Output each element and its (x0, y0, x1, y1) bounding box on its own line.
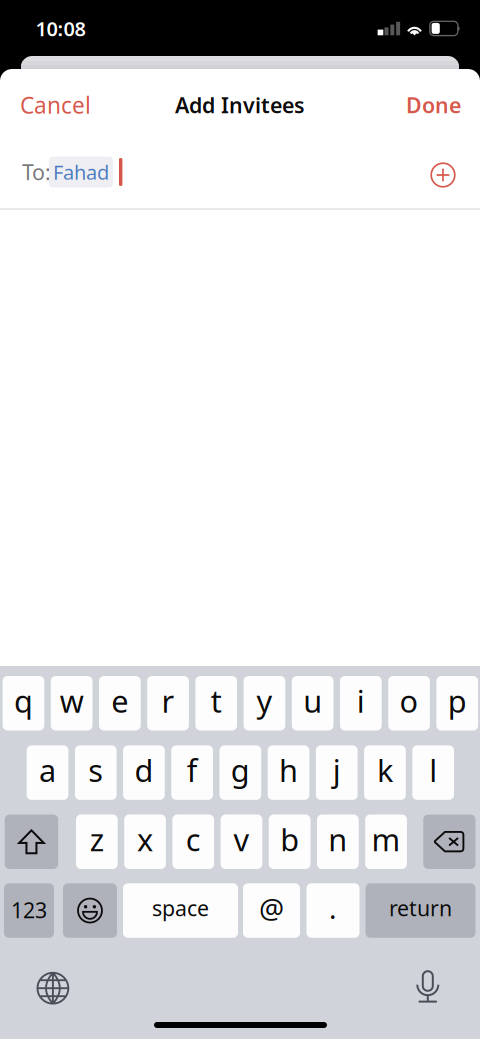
staticText: s (88, 750, 103, 790)
button[interactable]: j (316, 745, 358, 800)
staticText: v (233, 819, 249, 860)
button[interactable]: r (147, 676, 189, 730)
button[interactable]: space (123, 883, 238, 938)
staticText: y (256, 680, 272, 721)
button[interactable]: t (195, 676, 237, 730)
staticText: a (39, 750, 56, 790)
button[interactable]: y (244, 676, 285, 730)
staticText: space (152, 894, 209, 922)
button[interactable]: c (172, 814, 214, 869)
staticText: o (400, 680, 419, 721)
button[interactable]: i (340, 676, 382, 730)
button[interactable]: v (221, 814, 262, 869)
button[interactable]: a (27, 745, 68, 800)
staticText: b (280, 819, 299, 860)
staticText: c (186, 819, 201, 860)
button[interactable]: q (3, 676, 44, 730)
button[interactable]: d (123, 745, 165, 800)
button[interactable]: x (124, 814, 166, 869)
button[interactable]: Done (406, 91, 461, 119)
staticText: g (231, 750, 250, 790)
staticText: r (162, 680, 175, 721)
staticText: Fahad (53, 159, 109, 185)
button[interactable]: l (412, 745, 454, 800)
button[interactable]: Emoji (63, 883, 117, 938)
staticText: d (134, 750, 153, 790)
staticText: . (329, 889, 337, 927)
button[interactable]: . (306, 883, 359, 938)
staticText: h (279, 750, 298, 790)
staticText: 123 (11, 896, 47, 924)
button[interactable]: e (99, 676, 141, 730)
button[interactable]: h (268, 745, 309, 800)
button[interactable]: o (388, 676, 430, 730)
button[interactable]: Delete (423, 814, 475, 869)
staticText: k (377, 750, 393, 790)
staticText: Done (406, 91, 461, 119)
staticText: Cancel (20, 90, 91, 120)
button[interactable]: g (219, 745, 261, 800)
button[interactable]: u (292, 676, 333, 730)
button[interactable]: k (364, 745, 406, 800)
button[interactable]: Dictate (415, 968, 440, 1005)
button[interactable]: m (365, 814, 407, 869)
button[interactable]: z (76, 814, 118, 869)
button[interactable]: n (317, 814, 359, 869)
staticText: f (187, 750, 198, 790)
staticText: 10:08 (36, 15, 86, 42)
staticText: m (372, 819, 401, 860)
button[interactable]: Cancel (20, 90, 91, 120)
staticText: l (429, 750, 437, 790)
staticText: t (211, 680, 222, 721)
button[interactable]: f (171, 745, 213, 800)
button[interactable]: Next keyboard (36, 972, 69, 1005)
staticText: e (111, 680, 128, 721)
button[interactable]: @ (243, 883, 300, 938)
staticText: return (389, 894, 452, 922)
staticText: n (328, 819, 347, 860)
staticText: w (60, 680, 84, 721)
staticText: q (14, 680, 33, 721)
staticText: u (303, 680, 322, 721)
staticText: p (448, 680, 467, 721)
staticText: j (333, 750, 341, 790)
button[interactable]: 123 (4, 883, 54, 938)
button[interactable]: s (75, 745, 117, 800)
staticText: Add Invitees (175, 91, 305, 119)
button[interactable]: w (51, 676, 92, 730)
staticText: z (90, 819, 104, 860)
staticText: To: (22, 158, 51, 186)
button[interactable]: Shift (5, 814, 58, 869)
staticText: @ (259, 889, 284, 927)
staticText: i (357, 680, 365, 721)
button[interactable]: return (365, 883, 475, 938)
staticText: x (137, 819, 153, 860)
button[interactable]: p (436, 676, 478, 730)
button[interactable]: b (269, 814, 310, 869)
button[interactable]: Add contact (430, 162, 456, 188)
